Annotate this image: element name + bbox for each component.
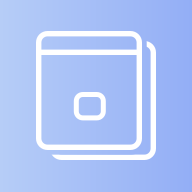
button[interactable]: Open (0, 0, 192, 192)
